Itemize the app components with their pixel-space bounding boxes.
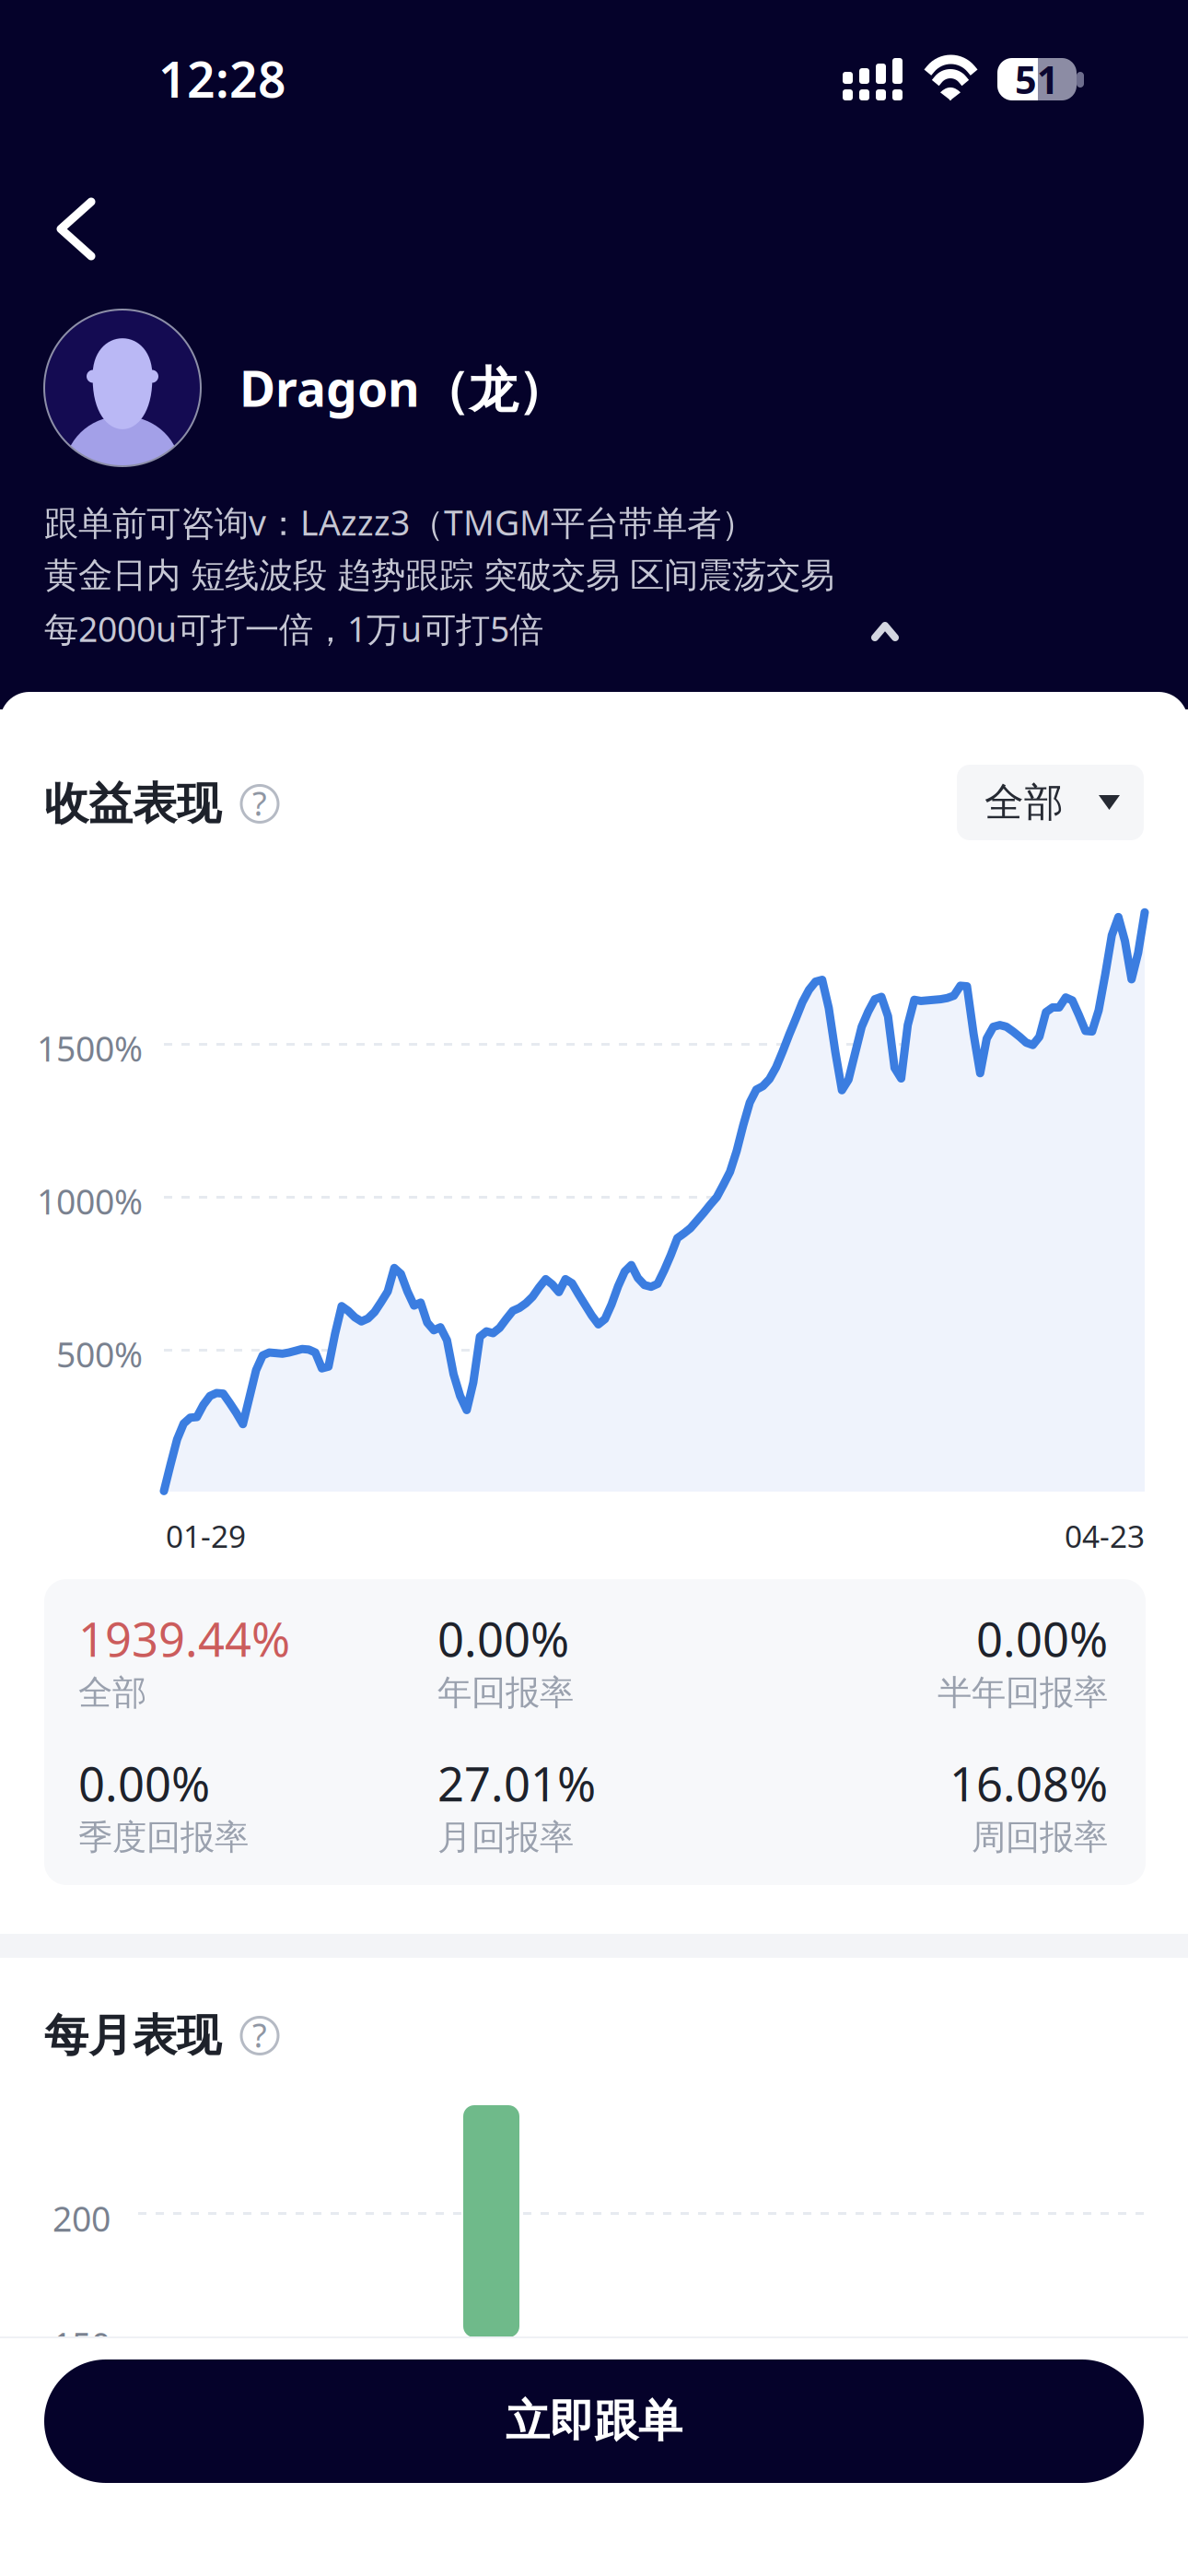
staticText: ? bbox=[252, 2013, 267, 2057]
staticText: 周回报率 bbox=[972, 1816, 1108, 1858]
staticText: 12:28 bbox=[158, 46, 286, 111]
button[interactable]: Back bbox=[29, 170, 122, 287]
staticText: 51 bbox=[1015, 54, 1059, 105]
staticText: 黄金日内 短线波段 趋势跟踪 突破交易 区间震荡交易 bbox=[44, 554, 834, 597]
staticText: 1500% bbox=[37, 1025, 143, 1071]
button[interactable]: 全部 bbox=[957, 765, 1144, 840]
staticText: Dragon（龙） bbox=[239, 355, 566, 421]
staticText: 季度回报率 bbox=[78, 1816, 249, 1858]
staticText: 500% bbox=[56, 1331, 143, 1377]
staticText: 1939.44% bbox=[78, 1608, 290, 1670]
staticText: 01-29 bbox=[166, 1516, 246, 1556]
staticText: 全部 bbox=[984, 778, 1064, 827]
staticText: 16.08% bbox=[949, 1752, 1108, 1814]
staticText: 跟单前可咨询v：LAzzz3（TMGM平台带单者） bbox=[44, 499, 755, 545]
staticText: 27.01% bbox=[437, 1752, 596, 1814]
staticText: 0.00% bbox=[78, 1752, 210, 1814]
staticText: 月回报率 bbox=[437, 1816, 574, 1858]
staticText: 每2000u可打一倍，1万u可打5倍 bbox=[44, 606, 543, 651]
staticText: 04-23 bbox=[1065, 1516, 1145, 1556]
staticText: 0.00% bbox=[976, 1608, 1108, 1670]
button[interactable]: About 收益表现 bbox=[241, 785, 278, 822]
staticText: 年回报率 bbox=[437, 1672, 574, 1714]
staticText: 收益表现 bbox=[44, 777, 221, 831]
staticText: ? bbox=[252, 781, 267, 825]
staticText: 半年回报率 bbox=[938, 1672, 1108, 1714]
staticText: 200 bbox=[52, 2195, 111, 2241]
button[interactable]: 立即跟单 bbox=[44, 2359, 1144, 2483]
staticText: 1000% bbox=[37, 1178, 143, 1224]
staticText: 立即跟单 bbox=[506, 2394, 682, 2448]
staticText: 150 bbox=[52, 2322, 111, 2367]
button[interactable]: Collapse bbox=[847, 598, 923, 665]
staticText: 0.00% bbox=[437, 1608, 569, 1670]
staticText: 每月表现 bbox=[44, 2008, 221, 2063]
button[interactable]: About 每月表现 bbox=[241, 2017, 278, 2054]
staticText: 全部 bbox=[78, 1672, 146, 1714]
